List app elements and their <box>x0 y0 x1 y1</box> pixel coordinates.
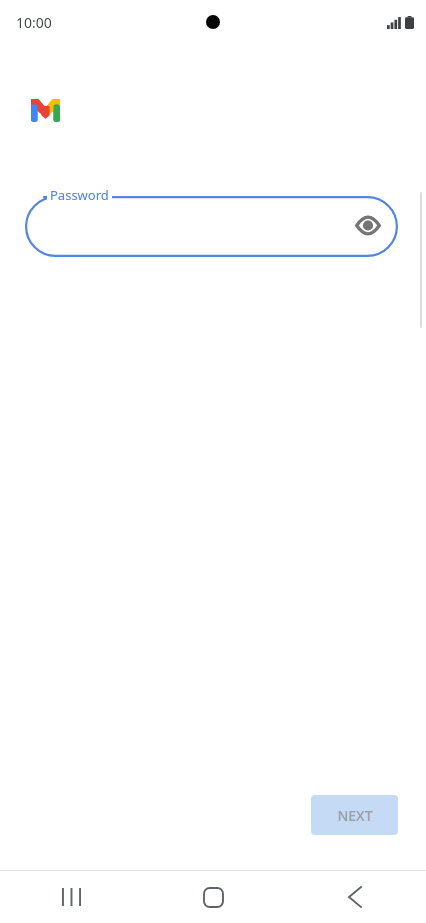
button[interactable]: Home <box>142 871 284 923</box>
staticText: NEXT <box>337 806 373 825</box>
button[interactable] <box>25 196 398 257</box>
button[interactable]: NEXT <box>311 795 398 835</box>
button[interactable]: Recents <box>0 871 142 923</box>
button[interactable]: Show password <box>350 207 386 243</box>
staticText: Password <box>50 186 109 204</box>
button[interactable]: Back <box>284 871 426 923</box>
staticText: 10:00 <box>16 13 52 32</box>
